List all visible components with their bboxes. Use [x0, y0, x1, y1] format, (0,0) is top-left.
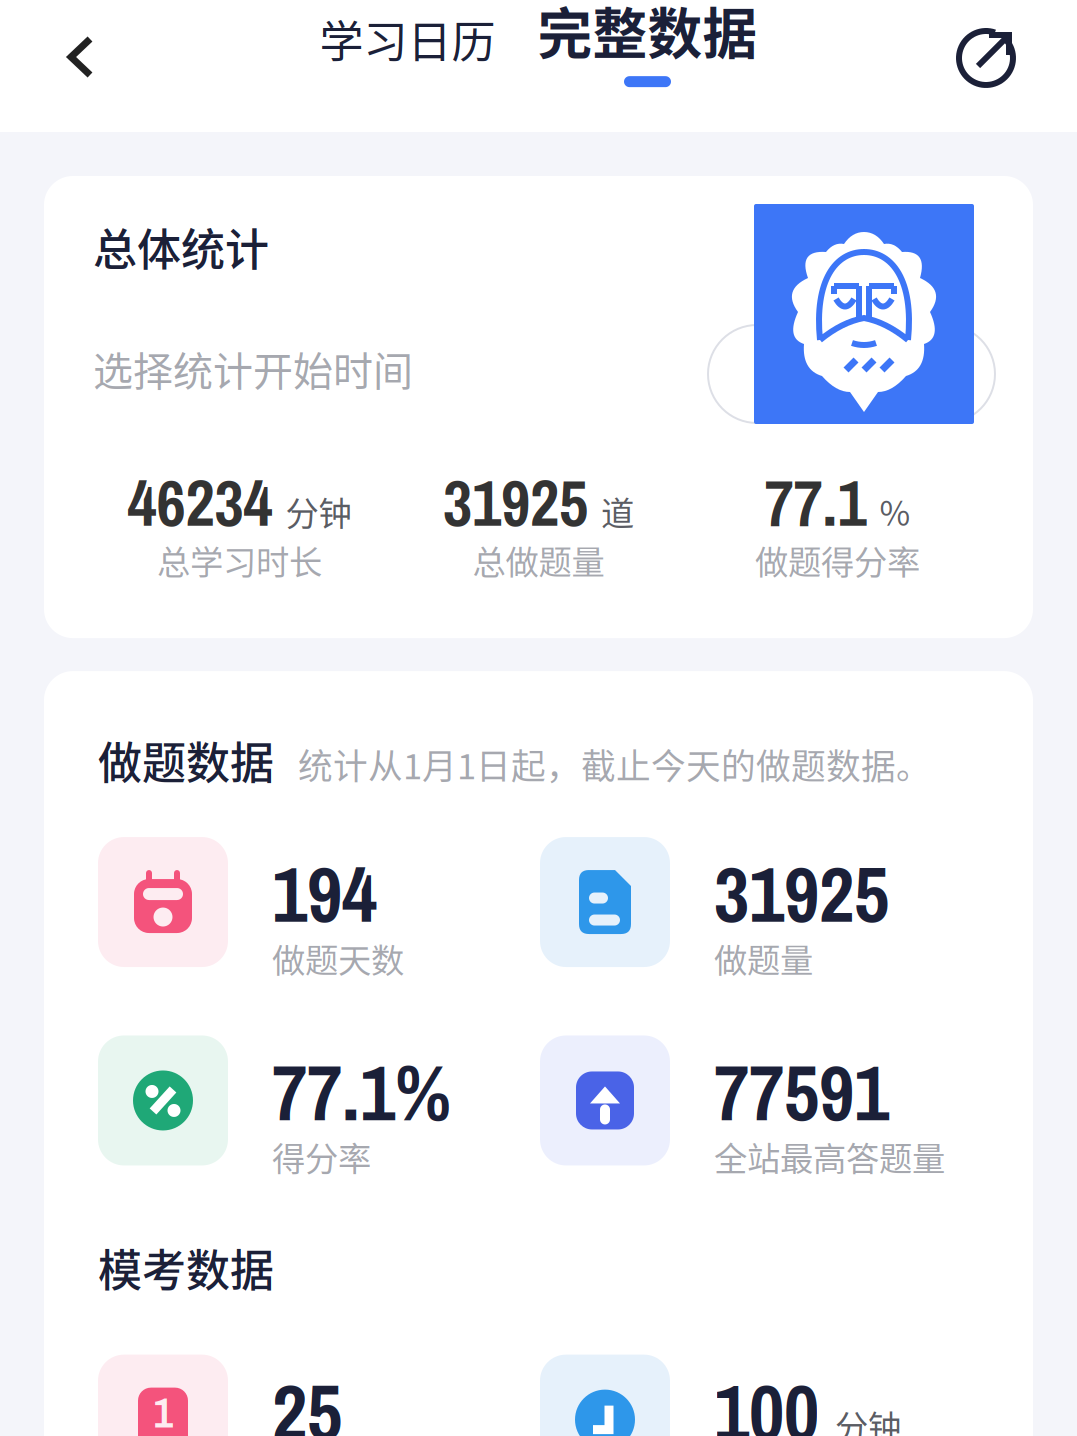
- staticText: 46234: [127, 460, 272, 546]
- staticText: 100: [714, 1359, 819, 1436]
- button[interactable]: 选择统计开始时间: [93, 340, 413, 398]
- staticText: 做题量: [714, 934, 813, 982]
- staticText: 统计从1月1日起，截止今天的做题数据。: [298, 739, 931, 789]
- staticText: 模考数据: [98, 1236, 274, 1299]
- button[interactable]: 完整数据: [537, 0, 757, 97]
- staticText: 194: [272, 842, 377, 946]
- staticText: 31925: [443, 460, 588, 546]
- staticText: 学习日历: [319, 7, 495, 71]
- staticText: 77591: [714, 1040, 889, 1144]
- staticText: 总体统计: [93, 215, 269, 279]
- staticText: 分钟: [285, 487, 351, 535]
- staticText: 做题得分率: [755, 536, 920, 584]
- staticText: 总做题量: [472, 536, 604, 584]
- staticText: 道: [601, 487, 634, 535]
- staticText: 全站最高答题量: [714, 1132, 945, 1181]
- staticText: 77.1%: [272, 1040, 451, 1144]
- staticText: 31925: [714, 842, 889, 946]
- staticText: %: [879, 487, 910, 535]
- staticText: 完整数据: [537, 0, 757, 69]
- staticText: 选择统计开始时间: [93, 340, 413, 398]
- staticText: 分钟: [835, 1401, 901, 1436]
- button[interactable]: Back: [0, 0, 117, 93]
- staticText: 得分率: [272, 1132, 371, 1181]
- staticText: 1: [153, 1383, 172, 1436]
- staticText: 做题数据: [98, 728, 274, 792]
- staticText: 总学习时长: [157, 536, 322, 584]
- button[interactable]: Share: [949, 0, 1077, 91]
- staticText: 77.1: [764, 460, 866, 546]
- button[interactable]: 学习日历: [319, 0, 495, 71]
- staticText: 25: [272, 1359, 342, 1436]
- staticText: 做题天数: [272, 934, 404, 982]
